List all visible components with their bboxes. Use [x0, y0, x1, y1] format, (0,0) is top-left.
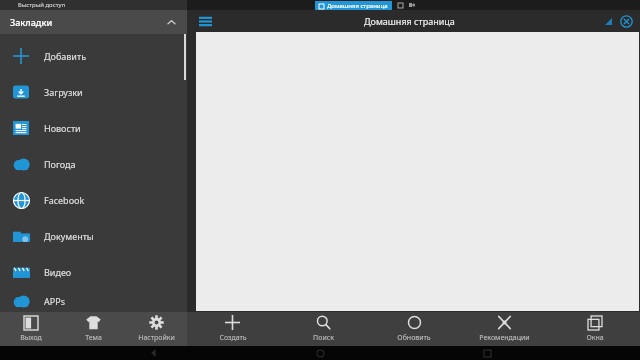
- button[interactable]: Обновить: [369, 312, 459, 346]
- staticText: Документы: [44, 230, 94, 242]
- staticText: Закладки: [10, 16, 53, 28]
- button[interactable]: Facebook: [0, 182, 187, 218]
- button[interactable]: Окна: [550, 312, 640, 346]
- staticText: Рекомендации: [479, 333, 530, 343]
- button[interactable]: Рекомендации: [459, 312, 550, 346]
- staticText: APPs: [44, 295, 65, 307]
- button[interactable]: Создать: [187, 312, 278, 346]
- button[interactable]: Menu: [195, 11, 215, 31]
- button[interactable]: Close: [618, 13, 634, 29]
- button[interactable]: Загрузки: [0, 74, 187, 110]
- staticText: Быстрый доступ: [18, 1, 66, 9]
- staticText: Домашняя страница: [327, 2, 388, 10]
- button[interactable]: Home: [307, 346, 333, 360]
- button[interactable]: Поиск: [278, 312, 369, 346]
- staticText: Погода: [44, 158, 76, 170]
- button[interactable]: Документы: [0, 218, 187, 254]
- button[interactable]: Новости: [0, 110, 187, 146]
- staticText: Обновить: [397, 333, 431, 343]
- staticText: Загрузки: [44, 86, 83, 98]
- staticText: Видео: [44, 266, 72, 278]
- staticText: Создать: [219, 333, 247, 343]
- button[interactable]: Быстрый доступ: [0, 0, 187, 10]
- button[interactable]: APPs: [0, 290, 187, 312]
- staticText: Facebook: [44, 194, 85, 206]
- button[interactable]: New tab: [398, 3, 403, 8]
- staticText: Окна: [586, 333, 604, 343]
- button[interactable]: Выход: [0, 312, 62, 346]
- button[interactable]: Добавить: [0, 38, 187, 74]
- staticText: Добавить: [44, 50, 87, 62]
- staticText: Настройки: [138, 333, 175, 343]
- button[interactable]: Настройки: [125, 312, 187, 346]
- button[interactable]: Тема: [62, 312, 125, 346]
- staticText: Выход: [20, 333, 42, 343]
- button[interactable]: Погода: [0, 146, 187, 182]
- button[interactable]: Видео: [0, 254, 187, 290]
- button[interactable]: Домашняя страница: [315, 1, 392, 10]
- other: Collapse: [166, 17, 177, 28]
- button[interactable]: Recents: [474, 346, 500, 360]
- button[interactable]: Закладки: [0, 10, 187, 34]
- staticText: Тема: [85, 333, 102, 343]
- staticText: Поиск: [313, 333, 334, 343]
- button[interactable]: Back: [141, 346, 167, 360]
- staticText: Домашняя страница: [364, 15, 455, 27]
- staticText: Новости: [44, 122, 81, 134]
